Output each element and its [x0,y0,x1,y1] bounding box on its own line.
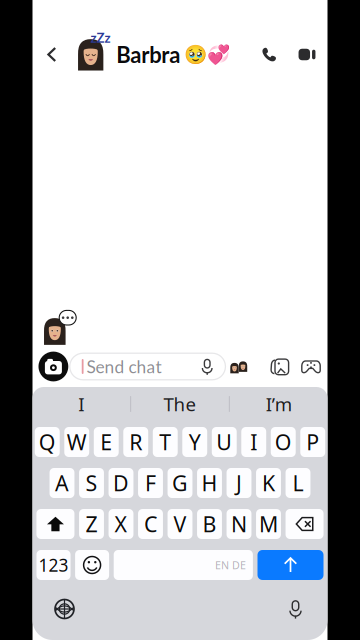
button[interactable]: X [108,509,133,539]
button[interactable]: J [226,468,251,498]
button[interactable]: S [79,468,104,498]
button[interactable]: M [256,509,281,539]
staticText: G [172,469,188,497]
button[interactable]: 123 [36,550,70,580]
button[interactable]: Y [182,427,207,457]
button[interactable]: W [64,427,89,457]
staticText: Barbra [116,41,180,68]
button[interactable]: EN DE [114,550,253,580]
button[interactable]: Stickers [268,354,292,378]
button[interactable]: A [49,468,74,498]
staticText: L [292,469,303,497]
button[interactable]: Dictate [275,592,315,626]
staticText: I [78,392,84,416]
button[interactable]: U [212,427,237,457]
staticText: R [129,428,142,456]
staticText: D [113,469,129,497]
staticText: EN DE [215,558,246,572]
staticText: 🥹💞 [184,44,230,65]
button[interactable]: Shift [36,509,74,539]
staticText: M [259,510,278,538]
staticText: J [236,469,242,497]
button[interactable]: F [138,468,163,498]
staticText: W [67,428,87,456]
button[interactable]: O [271,427,296,457]
staticText: E [100,428,112,456]
button[interactable]: I [241,427,266,457]
staticText: X [114,510,127,538]
button[interactable]: Delete [285,509,323,539]
staticText: C [144,510,157,538]
staticText: Y [189,428,201,456]
staticText: S [85,469,97,497]
button[interactable]: I [32,387,130,421]
button[interactable]: P [300,427,325,457]
staticText: zZz [90,29,110,45]
button[interactable]: K [256,468,281,498]
button[interactable]: Q [35,427,60,457]
button[interactable]: G [167,468,192,498]
button[interactable]: Audio call [256,32,282,76]
staticText: T [159,428,171,456]
button[interactable]: Z [79,509,104,539]
button[interactable]: I’m [230,387,327,421]
button[interactable]: Send [257,550,323,580]
button[interactable]: Send chat [70,353,225,380]
button[interactable]: Switch keyboard [44,592,84,626]
button[interactable]: D [108,468,133,498]
button[interactable]: T [153,427,178,457]
button[interactable]: C [138,509,163,539]
staticText: 123 [38,553,68,576]
button[interactable]: R [123,427,148,457]
staticText: I [250,428,257,456]
staticText: P [306,428,319,456]
staticText: U [216,428,232,456]
button[interactable]: Camera [36,349,70,383]
button[interactable]: L [285,468,310,498]
button[interactable]: Back [36,32,66,76]
staticText: Z [85,510,97,538]
button[interactable]: Emoji [75,550,109,580]
staticText: Q [39,428,56,456]
staticText: K [262,469,275,497]
staticText: A [55,469,69,497]
button[interactable]: E [94,427,119,457]
staticText: O [275,428,292,456]
button[interactable]: B [197,509,222,539]
staticText: I’m [266,392,292,416]
button[interactable]: N [226,509,251,539]
staticText: F [145,469,156,497]
button[interactable]: Video call [294,32,320,76]
staticText: The [163,392,196,416]
staticText: V [173,510,186,538]
button[interactable]: Games [299,354,323,378]
staticText: Send chat [86,356,161,377]
staticText: B [202,510,216,538]
button[interactable]: H [197,468,222,498]
button[interactable]: The [131,387,229,421]
button[interactable]: V [167,509,192,539]
staticText: H [201,469,217,497]
button[interactable]: Friends [227,354,251,378]
staticText: N [231,510,247,538]
